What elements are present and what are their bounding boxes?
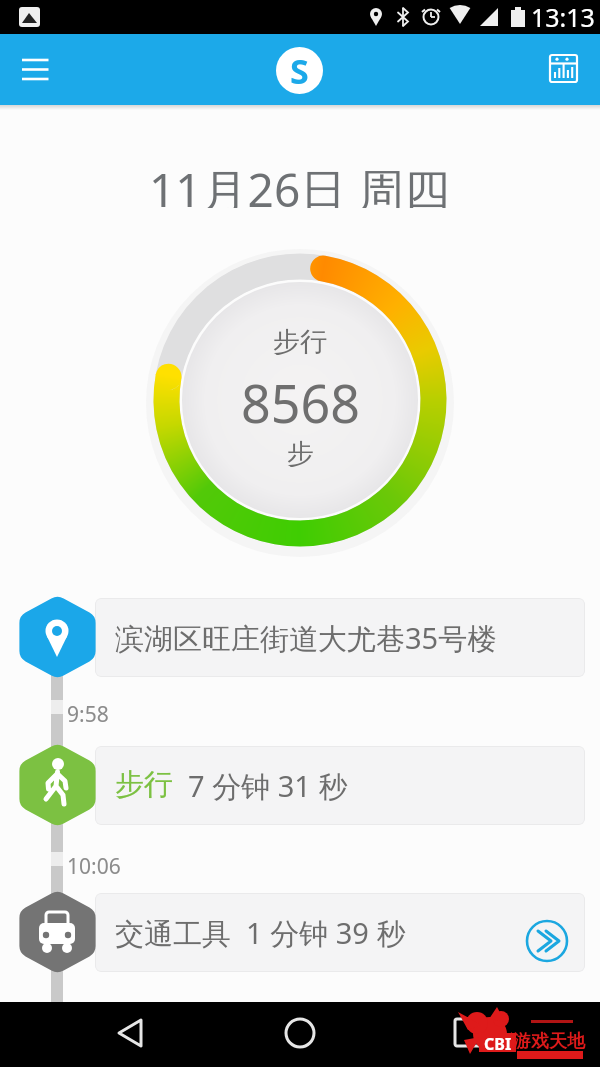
button[interactable]	[270, 1002, 330, 1067]
staticText: 8568	[241, 367, 360, 429]
staticText: 步	[287, 437, 314, 467]
button[interactable]	[440, 1002, 500, 1067]
staticText: 滨湖区旺庄街道大尤巷35号楼	[115, 618, 497, 658]
button[interactable]	[544, 50, 584, 90]
staticText: 9:58	[67, 700, 109, 724]
button[interactable]: 步行	[95, 746, 585, 825]
staticText: 11月26日 周四	[149, 158, 451, 208]
staticText: 游戏天地	[513, 1030, 585, 1053]
button[interactable]	[19, 595, 96, 679]
staticText: 10:06	[67, 852, 121, 876]
button[interactable]	[525, 919, 569, 963]
staticText: 7 分钟 31 秒	[173, 766, 348, 806]
button[interactable]	[19, 890, 96, 974]
button[interactable]	[12, 48, 58, 92]
staticText: S	[290, 48, 309, 94]
staticText: 13:13	[531, 0, 595, 34]
button[interactable]	[19, 743, 96, 827]
button[interactable]: 交通工具 1 分钟 39 秒	[95, 893, 585, 972]
button[interactable]: S	[276, 47, 323, 94]
staticText: 步行	[115, 766, 173, 803]
staticText: 步行	[273, 325, 327, 355]
button[interactable]: 滨湖区旺庄街道大尤巷35号楼	[95, 598, 585, 677]
button[interactable]	[100, 1002, 160, 1067]
staticText: 交通工具 1 分钟 39 秒	[115, 913, 406, 953]
staticText: CBI	[484, 1033, 512, 1052]
